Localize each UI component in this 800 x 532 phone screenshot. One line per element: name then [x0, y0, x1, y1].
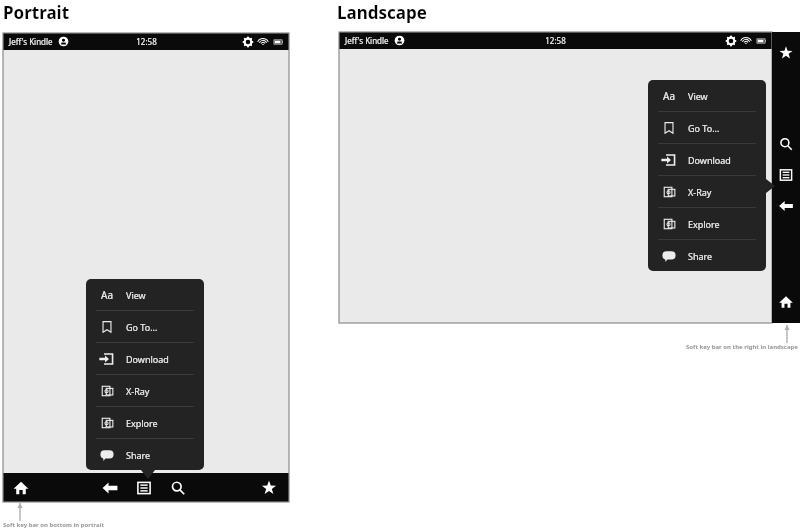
- staticText: Explore: [688, 218, 720, 230]
- button[interactable]: Share: [648, 240, 766, 271]
- staticText: View: [688, 90, 708, 102]
- staticText: Go To...: [688, 122, 720, 134]
- button[interactable]: Bookmarks: [256, 475, 282, 501]
- staticText: X-Ray: [126, 385, 150, 397]
- staticText: Share: [688, 250, 713, 262]
- button[interactable]: Back: [97, 475, 123, 501]
- staticText: 12:58: [136, 36, 157, 47]
- button[interactable]: Search: [774, 132, 798, 156]
- button[interactable]: Menu: [131, 475, 157, 501]
- button[interactable]: Download: [86, 343, 204, 374]
- staticText: Explore: [126, 417, 158, 429]
- button[interactable]: Go To...: [86, 311, 204, 342]
- button[interactable]: Aa: [648, 80, 766, 111]
- button[interactable]: Share: [86, 439, 204, 470]
- staticText: Landscape: [337, 1, 427, 24]
- staticText: View: [126, 289, 146, 301]
- button[interactable]: Explore: [86, 407, 204, 438]
- button[interactable]: Menu: [774, 163, 798, 187]
- button[interactable]: Home: [8, 475, 34, 501]
- staticText: Go To...: [126, 321, 158, 333]
- button[interactable]: X-Ray: [86, 375, 204, 406]
- button[interactable]: Aa: [86, 279, 204, 310]
- staticText: Soft key bar on the right in landscape: [686, 343, 798, 351]
- button[interactable]: X-Ray: [648, 176, 766, 207]
- staticText: Download: [688, 154, 731, 166]
- staticText: 12:58: [545, 35, 566, 46]
- staticText: Aa: [663, 89, 675, 103]
- staticText: X-Ray: [688, 186, 712, 198]
- button[interactable]: Download: [648, 144, 766, 175]
- button[interactable]: Explore: [648, 208, 766, 239]
- button[interactable]: Back: [774, 194, 798, 218]
- staticText: Share: [126, 449, 151, 461]
- staticText: Download: [126, 353, 169, 365]
- staticText: Jeff's Kindle: [345, 35, 389, 46]
- button[interactable]: Search: [165, 475, 191, 501]
- staticText: Aa: [101, 288, 113, 302]
- button[interactable]: Home: [774, 290, 798, 314]
- button[interactable]: Go To...: [648, 112, 766, 143]
- staticText: Soft key bar on bottom in portrait: [3, 521, 105, 529]
- staticText: Jeff's Kindle: [9, 36, 53, 47]
- staticText: Portrait: [3, 1, 70, 24]
- button[interactable]: Bookmarks: [774, 41, 798, 65]
